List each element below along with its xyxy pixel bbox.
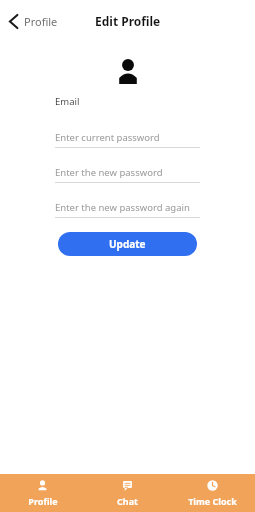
staticText: Chat <box>117 495 138 507</box>
button[interactable]: Enter the new password again <box>55 201 200 218</box>
button[interactable]: Enter current password <box>55 131 200 148</box>
staticText: Edit Profile <box>95 13 161 29</box>
staticText: Enter the new password again <box>55 201 190 214</box>
button[interactable]: Time Clock <box>170 476 255 510</box>
button[interactable]: Profile <box>0 476 85 510</box>
staticText: Enter the new password <box>55 166 163 179</box>
staticText: Email <box>55 95 80 108</box>
other: Profile photo <box>117 58 139 84</box>
staticText: Profile <box>28 495 58 507</box>
staticText: Profile <box>24 14 58 29</box>
button[interactable]: Update <box>58 232 197 256</box>
staticText: Enter current password <box>55 131 160 144</box>
button[interactable]: Chat <box>85 476 170 510</box>
button[interactable]: Profile <box>6 10 60 33</box>
staticText: Time Clock <box>188 495 237 507</box>
staticText: Update <box>109 237 146 251</box>
button[interactable]: Enter the new password <box>55 166 200 183</box>
